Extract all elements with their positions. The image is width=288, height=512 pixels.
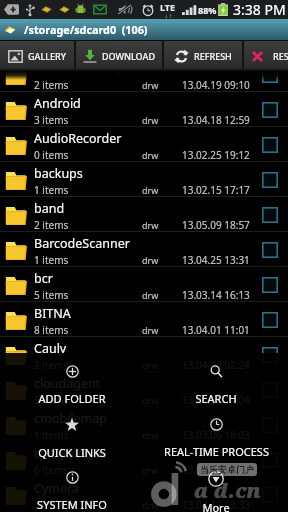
staticText: 3 items: [34, 393, 69, 407]
staticText: drw: [142, 79, 159, 91]
staticText: drw: [142, 499, 159, 511]
staticText: 13.04.25 13:31: [182, 253, 250, 267]
staticText: 13.04.04 02:24: [182, 358, 250, 372]
button[interactable]: Select bcr: [262, 277, 278, 293]
button[interactable]: cloudagent: [0, 372, 288, 406]
button[interactable]: Select band: [262, 207, 278, 223]
staticText: 13.04.12 11:04: [182, 393, 250, 407]
staticText: LTE: [160, 1, 176, 13]
button[interactable]: Select BITNA: [262, 312, 278, 328]
staticText: 8 items: [34, 323, 69, 337]
staticText: drw: [142, 324, 159, 336]
staticText: comyouload: [34, 445, 107, 462]
staticText: ↓↑: [164, 13, 173, 19]
staticText: 3 items: [34, 113, 69, 127]
button[interactable]: Select Android: [262, 102, 278, 118]
staticText: drw: [142, 149, 159, 161]
button[interactable]: Select backups: [262, 172, 278, 188]
staticText: BarcodeScanner: [34, 235, 130, 252]
staticText: 13.02.15 17:17: [182, 183, 250, 197]
staticText: GALLERY: [28, 50, 67, 62]
staticText: RESET: [273, 50, 288, 62]
staticText: drw: [142, 394, 159, 406]
staticText: BITNA: [34, 305, 71, 322]
staticText: 88%: [198, 4, 217, 16]
staticText: Cymera: [34, 480, 79, 497]
button[interactable]: band: [0, 197, 288, 231]
staticText: 13.02.25 19:12: [182, 148, 250, 162]
button[interactable]: Select Cymera: [262, 487, 278, 503]
staticText: drw: [142, 184, 159, 196]
button[interactable]: Android: [0, 92, 288, 126]
button[interactable]: QUICK LINKS: [0, 406, 144, 459]
button[interactable]: Select AudioRecorder: [262, 137, 278, 153]
staticText: 0 items: [34, 148, 69, 162]
staticText: 13.05.09 18:57: [182, 218, 250, 232]
staticText: SYSTEM INFO: [37, 497, 107, 512]
staticText: Cauly: [34, 340, 67, 357]
staticText: 6 items: [34, 463, 69, 477]
button[interactable]: BarcodeScanner: [0, 232, 288, 266]
staticText: 13.04.12 13:33: [182, 498, 250, 512]
staticText: QUICK LINKS: [38, 445, 106, 459]
staticText: REAL-TIME PROCESS: [164, 444, 269, 459]
button[interactable]: AudioRecorder: [0, 127, 288, 161]
staticText: AhnLab V3 Log: [34, 60, 122, 77]
staticText: SEARCH: [195, 391, 237, 406]
staticText: cloudagent: [34, 375, 101, 392]
staticText: REFRESH: [194, 50, 232, 62]
staticText: ADD FOLDER: [38, 391, 106, 406]
button[interactable]: backups: [0, 162, 288, 196]
staticText: drw: [142, 289, 159, 301]
button[interactable]: Select cmobilemap: [262, 417, 278, 433]
button[interactable]: cmobilemap: [0, 407, 288, 441]
button[interactable]: GALLERY: [0, 41, 74, 71]
staticText: band: [34, 200, 65, 217]
button[interactable]: Select Cauly: [262, 347, 278, 363]
staticText: 13.03.14 16:13: [182, 288, 250, 302]
button[interactable]: comyouload: [0, 442, 288, 476]
staticText: drw: [142, 254, 159, 266]
staticText: Android: [34, 95, 81, 112]
button[interactable]: ADD FOLDER: [0, 353, 144, 406]
button[interactable]: BITNA: [0, 302, 288, 336]
staticText: AudioRecorder: [34, 130, 122, 147]
button[interactable]: Cauly: [0, 337, 288, 371]
button[interactable]: Select AhnLab V3 Log: [262, 67, 278, 83]
staticText: bcr: [34, 270, 53, 287]
staticText: 1 items: [34, 183, 69, 197]
staticText: drw: [142, 429, 159, 441]
button[interactable]: REAL-TIME PROCESS: [144, 406, 288, 459]
staticText: 18 items: [34, 498, 75, 512]
button[interactable]: SYSTEM INFO: [0, 459, 144, 512]
staticText: 2 items: [34, 218, 69, 232]
staticText: backups: [34, 165, 83, 182]
button[interactable]: More: [144, 459, 288, 512]
button[interactable]: Select cloudagent: [262, 382, 278, 398]
staticText: drw: [142, 464, 159, 476]
button[interactable]: SEARCH: [144, 353, 288, 406]
staticText: a d.cn: [194, 477, 261, 504]
button[interactable]: Select comyouload: [262, 452, 278, 468]
staticText: 3:38 PM: [233, 0, 286, 19]
button[interactable]: REFRESH: [164, 41, 242, 71]
staticText: 13.03.06 18:03: [182, 428, 250, 442]
button[interactable]: RESET: [244, 41, 288, 71]
staticText: 当乐安卓门户: [200, 464, 254, 475]
staticText: 5 items: [34, 288, 69, 302]
staticText: drw: [142, 359, 159, 371]
staticText: More: [202, 500, 230, 512]
staticText: DOWNLOAD: [102, 50, 155, 62]
staticText: /storage/sdcard0 (106): [24, 22, 148, 37]
staticText: 1 items: [34, 428, 69, 442]
staticText: 13.04.02 09:21: [182, 463, 250, 477]
button[interactable]: Select BarcodeScanner: [262, 242, 278, 258]
staticText: drw: [142, 114, 159, 126]
button[interactable]: DOWNLOAD: [76, 41, 162, 71]
button[interactable]: bcr: [0, 267, 288, 301]
button[interactable]: /storage/sdcard0 (106): [0, 19, 288, 40]
staticText: 2 items: [34, 78, 69, 92]
button[interactable]: Cymera: [0, 477, 288, 511]
staticText: cmobilemap: [34, 410, 107, 427]
staticText: 13.04.19 09:10: [182, 78, 250, 92]
